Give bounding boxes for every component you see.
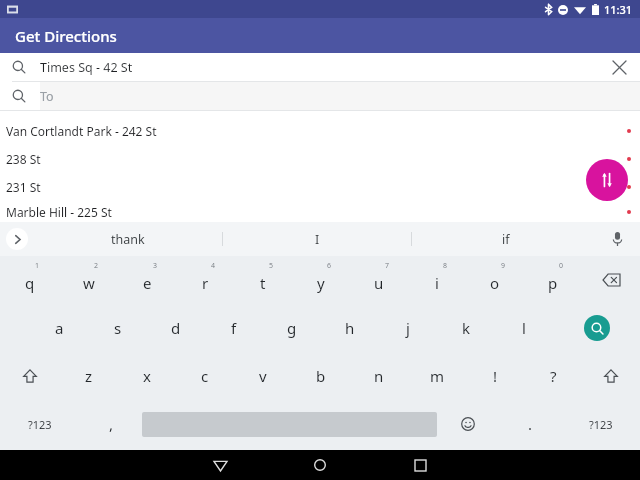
button[interactable]: Marble Hill - 225 St xyxy=(0,201,640,222)
button[interactable]: Shift xyxy=(582,352,640,400)
staticText: Van Cortlandt Park - 242 St xyxy=(6,123,157,139)
button[interactable]: 6 xyxy=(292,256,350,304)
staticText: 1 xyxy=(35,261,40,271)
button[interactable]: 0 xyxy=(524,256,582,304)
button[interactable]: ! xyxy=(466,352,524,400)
button[interactable]: k xyxy=(437,304,495,352)
staticText: x xyxy=(143,366,151,386)
button[interactable]: 9 xyxy=(466,256,524,304)
button[interactable]: s xyxy=(89,304,147,352)
button[interactable]: 4 xyxy=(176,256,234,304)
staticText: j xyxy=(406,318,410,338)
button[interactable]: Swap origin and destination xyxy=(586,159,628,201)
staticText: , xyxy=(109,414,114,434)
staticText: 9 xyxy=(501,261,506,271)
button[interactable]: Voice input xyxy=(604,226,630,252)
staticText: 231 St xyxy=(6,179,41,195)
staticText: v xyxy=(259,366,267,386)
button[interactable]: . xyxy=(499,400,561,448)
staticText: m xyxy=(430,366,445,386)
button[interactable]: Van Cortlandt Park - 242 St xyxy=(0,117,640,145)
button[interactable]: ?123 xyxy=(0,400,80,448)
staticText: i xyxy=(435,273,439,293)
button[interactable]: To xyxy=(0,82,640,110)
button[interactable]: I xyxy=(223,222,411,256)
button[interactable]: f xyxy=(205,304,263,352)
button[interactable]: d xyxy=(147,304,205,352)
button[interactable]: c xyxy=(176,352,234,400)
staticText: b xyxy=(316,366,326,386)
staticText: f xyxy=(231,318,237,338)
staticText: y xyxy=(317,273,325,293)
staticText: 5 xyxy=(269,261,274,271)
button[interactable] xyxy=(142,400,437,448)
staticText: if xyxy=(502,231,510,248)
button[interactable]: ? xyxy=(524,352,582,400)
button[interactable]: ?123 xyxy=(561,400,640,448)
staticText: Times Sq - 42 St xyxy=(40,59,133,76)
button[interactable]: Backspace xyxy=(582,256,640,304)
staticText: ! xyxy=(493,366,498,386)
button[interactable]: h xyxy=(321,304,379,352)
staticText: w xyxy=(83,273,95,293)
staticText: 11:31 xyxy=(604,2,633,17)
button[interactable]: Shift xyxy=(0,352,59,400)
staticText: ?123 xyxy=(589,417,613,432)
button[interactable]: l xyxy=(495,304,553,352)
staticText: e xyxy=(143,273,152,293)
button[interactable]: 231 St xyxy=(0,173,640,201)
button[interactable]: More suggestions xyxy=(6,228,28,250)
button[interactable]: , xyxy=(80,400,142,448)
button[interactable]: g xyxy=(263,304,321,352)
button[interactable]: Clear xyxy=(604,53,634,81)
button[interactable]: 2 xyxy=(59,256,118,304)
button[interactable]: j xyxy=(379,304,437,352)
button[interactable]: 5 xyxy=(234,256,292,304)
button[interactable]: Back xyxy=(192,450,248,480)
button[interactable]: m xyxy=(408,352,466,400)
button[interactable]: Home xyxy=(292,450,348,480)
staticText: 0 xyxy=(559,261,564,271)
staticText: q xyxy=(25,273,35,293)
staticText: I xyxy=(315,231,320,248)
staticText: ? xyxy=(550,366,557,386)
staticText: Get Directions xyxy=(15,26,117,46)
staticText: To xyxy=(40,88,54,105)
button[interactable]: thank xyxy=(34,222,222,256)
button[interactable]: a xyxy=(30,304,89,352)
staticText: . xyxy=(528,414,533,434)
staticText: r xyxy=(202,273,209,293)
staticText: k xyxy=(462,318,471,338)
staticText: h xyxy=(345,318,355,338)
staticText: o xyxy=(490,273,500,293)
staticText: 8 xyxy=(443,261,448,271)
button[interactable]: n xyxy=(350,352,408,400)
button[interactable]: Times Sq - 42 St xyxy=(0,53,640,81)
button[interactable]: v xyxy=(234,352,292,400)
staticText: s xyxy=(114,318,122,338)
button[interactable]: x xyxy=(118,352,176,400)
staticText: z xyxy=(85,366,93,386)
button[interactable]: 8 xyxy=(408,256,466,304)
staticText: Marble Hill - 225 St xyxy=(6,204,112,220)
button[interactable]: b xyxy=(292,352,350,400)
button[interactable]: 1 xyxy=(0,256,59,304)
button[interactable]: 7 xyxy=(350,256,408,304)
staticText: 7 xyxy=(385,261,390,271)
staticText: t xyxy=(260,273,266,293)
button[interactable]: Recent apps xyxy=(392,450,448,480)
button[interactable]: if xyxy=(412,222,600,256)
staticText: 3 xyxy=(153,261,158,271)
staticText: ?123 xyxy=(28,417,52,432)
staticText: n xyxy=(374,366,384,386)
button[interactable]: 238 St xyxy=(0,145,640,173)
staticText: p xyxy=(548,273,558,293)
staticText: 238 St xyxy=(6,151,41,167)
button[interactable]: Emoji xyxy=(437,400,499,448)
staticText: 6 xyxy=(327,261,332,271)
staticText: g xyxy=(287,318,297,338)
staticText: d xyxy=(171,318,181,338)
button[interactable]: Search xyxy=(553,304,640,352)
button[interactable]: 3 xyxy=(118,256,176,304)
button[interactable]: z xyxy=(59,352,118,400)
